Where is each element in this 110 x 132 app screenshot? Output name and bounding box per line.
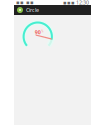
staticText: ▪▪▪ 12:30 [63, 0, 89, 6]
staticText: ▪▪ ▪▪ [16, 0, 34, 6]
staticText: Circle [26, 6, 39, 14]
staticText: % [41, 30, 43, 33]
staticText: 90 [35, 29, 41, 36]
